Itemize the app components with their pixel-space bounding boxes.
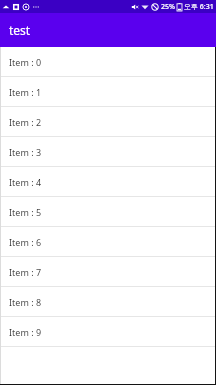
button[interactable]: Item : 4 — [0, 167, 216, 197]
button[interactable]: Item : 5 — [0, 197, 216, 227]
staticText: test — [9, 22, 31, 38]
staticText: 오후 6:31 — [184, 2, 214, 12]
button[interactable]: Item : 6 — [0, 227, 216, 257]
button[interactable]: Item : 2 — [0, 107, 216, 137]
staticText: 25% — [161, 2, 175, 12]
staticText: Item : 5 — [9, 206, 42, 218]
staticText: Item : 2 — [9, 116, 42, 128]
staticText: Item : 0 — [9, 56, 42, 68]
staticText: Item : 6 — [9, 236, 42, 248]
button[interactable]: Item : 7 — [0, 257, 216, 287]
button[interactable]: Item : 1 — [0, 77, 216, 107]
button[interactable]: Item : 9 — [0, 317, 216, 347]
button[interactable]: Item : 3 — [0, 137, 216, 167]
staticText: Item : 9 — [9, 326, 42, 338]
staticText: Item : 4 — [9, 176, 42, 188]
button[interactable]: Item : 8 — [0, 287, 216, 317]
button[interactable]: Item : 0 — [0, 47, 216, 77]
staticText: Item : 3 — [9, 146, 42, 158]
staticText: Item : 1 — [9, 86, 42, 98]
button[interactable]: test — [0, 13, 216, 47]
staticText: Item : 8 — [9, 296, 42, 308]
staticText: Item : 7 — [9, 266, 42, 278]
